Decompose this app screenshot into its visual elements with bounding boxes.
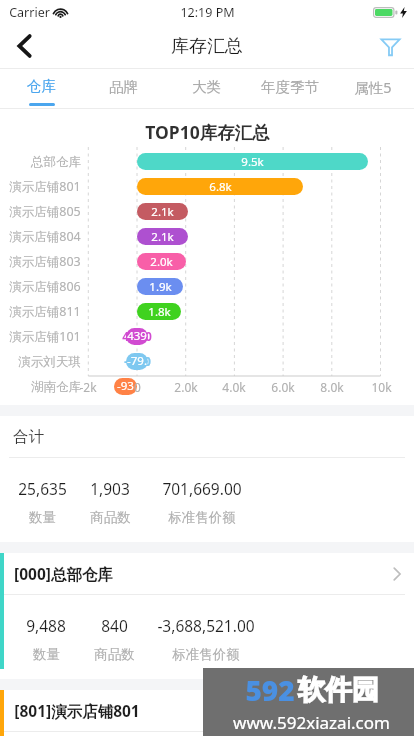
staticText: 总部仓库 — [31, 154, 81, 170]
staticText: 10k — [371, 379, 392, 395]
staticText: 2.1k — [151, 229, 174, 245]
staticText: 演示店铺803 — [9, 253, 81, 270]
button[interactable]: 品牌 — [82, 69, 165, 108]
staticText: 品牌 — [109, 78, 138, 96]
staticText: 演示店铺805 — [9, 203, 81, 220]
staticText: www.592xiazai.com — [233, 711, 390, 734]
staticText: 年度季节 — [261, 78, 319, 96]
staticText: 数量 — [33, 646, 60, 663]
staticText: 商品数 — [94, 646, 135, 663]
staticText: 1.8k — [148, 304, 171, 320]
button[interactable]: 大类 — [165, 69, 248, 108]
staticText: [000]总部仓库 — [14, 563, 113, 584]
staticText: 演示店铺804 — [9, 228, 81, 245]
staticText: 演示店铺811 — [9, 303, 81, 320]
staticText: 6.8k — [209, 179, 232, 195]
staticText: 库存汇总 — [171, 35, 243, 58]
staticText: 商品数 — [90, 509, 131, 526]
staticText: 4.0k — [222, 379, 246, 395]
staticText: 演示刘天琪 — [18, 354, 81, 370]
staticText: 6.0k — [271, 379, 295, 395]
staticText: 2.0k — [150, 254, 173, 270]
staticText: 840 — [101, 615, 128, 636]
staticText: 仓库 — [27, 77, 56, 95]
staticText: 8.0k — [320, 379, 344, 395]
button[interactable]: Back — [0, 24, 48, 68]
staticText: 12:19 PM — [180, 4, 235, 21]
staticText: 演示店铺801 — [9, 178, 81, 195]
button[interactable]: 仓库 — [0, 69, 82, 108]
staticText: 合计 — [13, 427, 44, 447]
staticText: 9,488 — [26, 615, 66, 636]
staticText: Carrier — [9, 4, 50, 21]
button[interactable]: 年度季节 — [248, 69, 331, 108]
staticText: -79.0 — [126, 353, 148, 370]
staticText: 标准售价额 — [168, 509, 236, 526]
staticText: 属性5 — [354, 77, 392, 97]
staticText: 数量 — [29, 509, 56, 526]
staticText: 1.9k — [149, 279, 172, 295]
staticText: 0 — [134, 379, 141, 395]
staticText: 大类 — [192, 78, 221, 96]
staticText: [801]演示店铺801 — [14, 700, 140, 721]
staticText: 439.0 — [122, 329, 152, 345]
staticText: TOP10库存汇总 — [145, 120, 270, 144]
staticText: 439.0 — [126, 328, 148, 345]
staticText: 湖南仓库 — [31, 379, 81, 395]
staticText: 9.5k — [241, 154, 264, 170]
staticText: 2.1k — [151, 204, 174, 220]
staticText: -939.0 — [114, 378, 137, 395]
staticText: -3,688,521.00 — [157, 615, 255, 636]
staticText: -2k — [79, 379, 97, 395]
button[interactable]: Filter — [366, 24, 414, 68]
staticText: 592 — [245, 671, 295, 709]
button[interactable]: [000]总部仓库 — [0, 553, 414, 679]
staticText: 标准售价额 — [172, 646, 240, 663]
staticText: 软件园 — [298, 673, 379, 707]
staticText: 25,635 — [18, 478, 67, 499]
staticText: 演示店铺101 — [9, 328, 81, 345]
staticText: 1,903 — [90, 478, 130, 499]
staticText: 演示店铺806 — [9, 278, 81, 295]
button[interactable]: [801]演示店铺801 — [0, 690, 414, 736]
staticText: 701,669.00 — [162, 478, 242, 499]
staticText: 2.0k — [174, 379, 198, 395]
staticText: -79.0 — [124, 354, 151, 370]
button[interactable]: 属性5 — [331, 69, 414, 108]
